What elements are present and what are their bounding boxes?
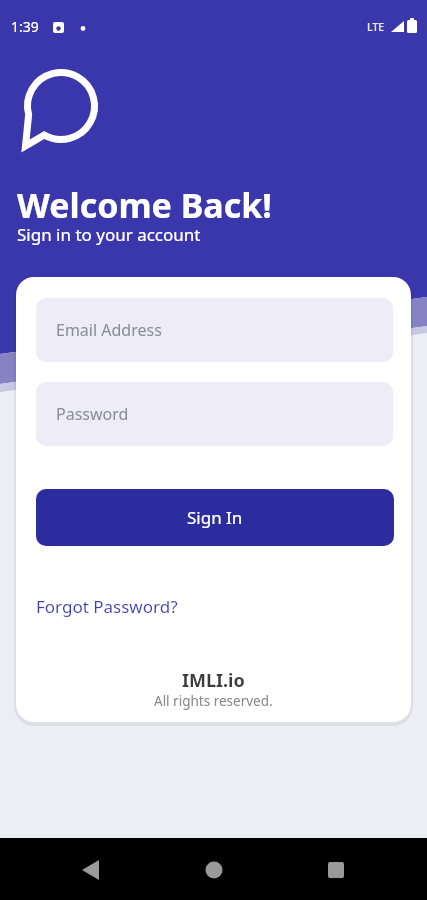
staticText: Sign In — [187, 506, 243, 529]
button[interactable] — [72, 850, 112, 890]
staticText: Forgot Password? — [36, 595, 178, 618]
button[interactable] — [194, 850, 234, 890]
button[interactable]: Email Address — [36, 298, 393, 362]
button[interactable]: Sign In — [36, 489, 394, 546]
staticText: Welcome Back! — [17, 182, 272, 228]
staticText: 1:39 — [11, 17, 39, 36]
staticText: LTE — [367, 20, 385, 34]
staticText: IMLI.io — [182, 668, 245, 693]
staticText: Sign in to your account — [17, 223, 201, 246]
button[interactable] — [316, 850, 356, 890]
staticText: Email Address — [56, 319, 162, 341]
staticText: All rights reserved. — [154, 692, 273, 710]
button[interactable]: Password — [36, 382, 393, 446]
button[interactable]: Forgot Password? — [36, 595, 178, 618]
staticText: Password — [56, 403, 129, 425]
